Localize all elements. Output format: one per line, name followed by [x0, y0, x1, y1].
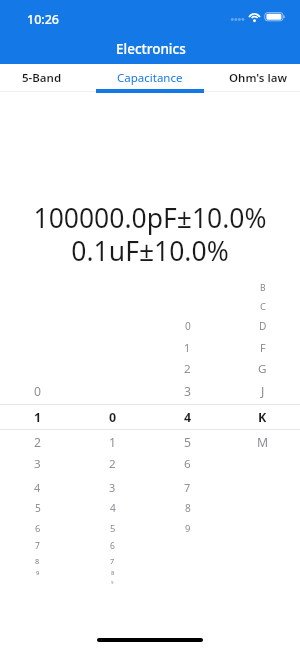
staticText: 7: [35, 540, 40, 552]
staticText: 8: [35, 556, 40, 566]
button[interactable]: Capacitance: [96, 64, 204, 92]
staticText: 1: [109, 434, 117, 451]
staticText: 6: [35, 522, 41, 535]
button[interactable]: tolerance: [225, 265, 300, 600]
staticText: 0.1uF±10.0%: [71, 233, 229, 269]
button[interactable]: tens digit: [0, 265, 75, 600]
staticText: Ohm's law: [229, 70, 288, 86]
staticText: 0: [34, 383, 42, 400]
staticText: 0: [109, 409, 117, 426]
staticText: D: [259, 319, 267, 333]
staticText: 9: [36, 569, 40, 577]
staticText: 2: [184, 361, 191, 377]
staticText: 3: [109, 480, 116, 495]
button[interactable]: units digit: [75, 265, 150, 600]
staticText: 3: [34, 456, 41, 472]
staticText: C: [260, 300, 266, 313]
staticText: 6: [184, 456, 191, 472]
staticText: 8: [185, 501, 191, 515]
staticText: 5: [184, 434, 192, 451]
staticText: J: [261, 383, 265, 400]
staticText: M: [257, 434, 269, 451]
staticText: 3: [184, 383, 192, 400]
staticText: 5: [35, 501, 41, 515]
staticText: 100000.0pF±10.0%: [33, 200, 267, 236]
staticText: 4: [110, 501, 116, 515]
button[interactable]: 5-Band: [0, 64, 96, 92]
button[interactable]: multiplier: [150, 265, 225, 600]
staticText: 0: [185, 319, 191, 333]
staticText: Electronics: [116, 40, 186, 58]
staticText: 6: [110, 540, 115, 552]
staticText: 9: [111, 579, 114, 585]
staticText: 2: [34, 434, 42, 451]
staticText: Capacitance: [117, 70, 183, 86]
staticText: G: [258, 361, 267, 377]
staticText: 9: [185, 522, 191, 535]
staticText: 1: [184, 340, 191, 355]
staticText: F: [260, 340, 266, 355]
staticText: 7: [184, 480, 191, 495]
staticText: 4: [34, 480, 41, 495]
staticText: B: [260, 282, 266, 294]
staticText: 10:26: [27, 11, 60, 28]
staticText: 5-Band: [22, 70, 62, 86]
staticText: 7: [110, 556, 115, 566]
staticText: K: [258, 409, 267, 426]
staticText: 8: [111, 569, 115, 577]
staticText: 5: [110, 522, 116, 535]
staticText: 2: [109, 456, 116, 472]
button[interactable]: Ohm's law: [204, 64, 300, 92]
staticText: 1: [34, 409, 42, 426]
staticText: 4: [184, 409, 192, 426]
